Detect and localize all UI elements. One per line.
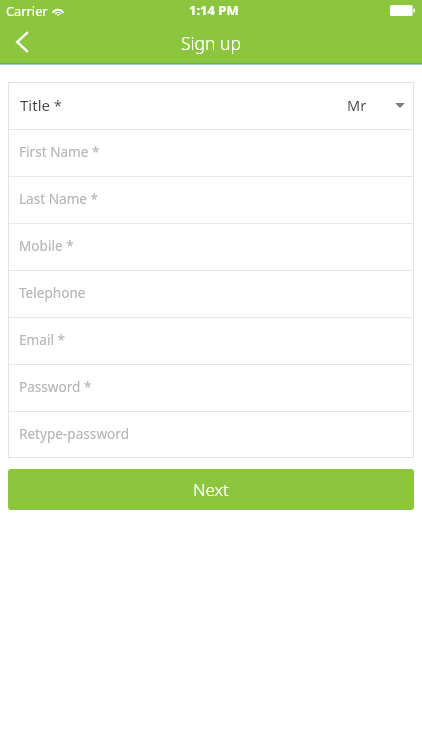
- staticText: Sign up: [181, 31, 241, 55]
- button[interactable]: Title *: [8, 82, 414, 129]
- button[interactable]: Retype-password: [8, 412, 414, 458]
- button[interactable]: Password *: [8, 365, 414, 411]
- staticText: Title *: [20, 95, 63, 115]
- staticText: Carrier: [6, 2, 48, 19]
- button[interactable]: Back: [0, 21, 44, 63]
- staticText: Mobile *: [19, 236, 74, 255]
- staticText: First Name *: [19, 142, 100, 161]
- button[interactable]: Telephone: [8, 271, 414, 317]
- staticText: Last Name *: [19, 189, 99, 208]
- staticText: Telephone: [19, 283, 86, 302]
- staticText: Email *: [19, 330, 65, 349]
- staticText: Next: [193, 478, 229, 501]
- button[interactable]: First Name *: [8, 130, 414, 176]
- staticText: Mr: [347, 95, 367, 115]
- staticText: Password *: [19, 377, 92, 396]
- button[interactable]: Email *: [8, 318, 414, 364]
- button[interactable]: Mobile *: [8, 224, 414, 270]
- staticText: Retype-password: [19, 424, 129, 443]
- button[interactable]: Last Name *: [8, 177, 414, 223]
- staticText: 1:14 PM: [189, 1, 239, 19]
- button[interactable]: Next: [8, 469, 414, 510]
